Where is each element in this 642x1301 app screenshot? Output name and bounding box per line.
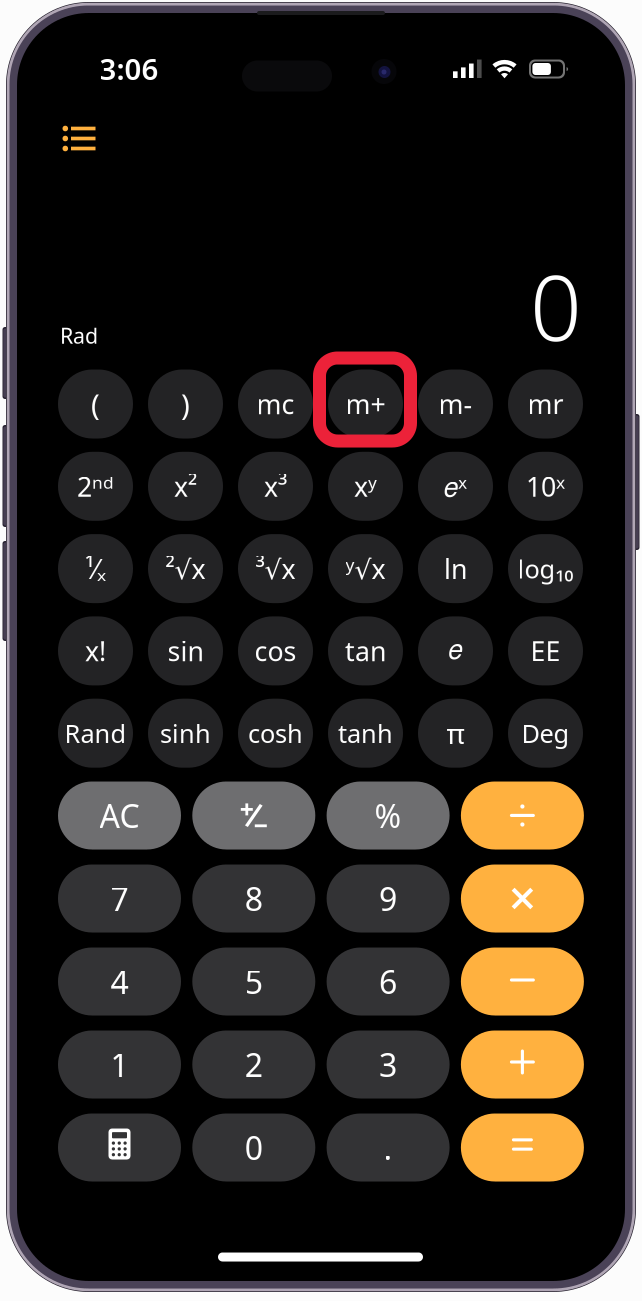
button[interactable]: m+	[328, 369, 403, 438]
button[interactable]: m-	[418, 369, 493, 438]
button[interactable]: 3	[327, 1030, 450, 1098]
staticText: 3:06	[99, 49, 158, 88]
staticText: 6	[379, 960, 397, 1003]
staticText: mc	[256, 386, 294, 422]
staticText: .	[384, 1126, 393, 1169]
button[interactable]: %	[327, 781, 450, 849]
button[interactable]: Add	[461, 1030, 584, 1098]
staticText: m-	[438, 386, 472, 422]
staticText: 8	[245, 877, 263, 920]
staticText: 7	[110, 877, 128, 920]
button[interactable]: 4	[58, 947, 181, 1015]
staticText: x³	[264, 469, 287, 504]
button[interactable]: 10ˣ	[508, 452, 583, 521]
staticText: x!	[85, 633, 106, 669]
staticText: m+	[345, 386, 385, 422]
button[interactable]: ln	[418, 534, 493, 603]
button[interactable]: Deg	[508, 699, 583, 768]
staticText: 𝑒	[448, 638, 462, 664]
button[interactable]: cos	[238, 616, 313, 685]
button[interactable]: ³√x	[238, 534, 313, 603]
button[interactable]: .	[327, 1113, 450, 1181]
button[interactable]: AC	[58, 781, 181, 849]
staticText: sin	[167, 633, 203, 669]
staticText: 10ˣ	[526, 469, 565, 504]
button[interactable]: x³	[238, 452, 313, 521]
staticText: mr	[527, 386, 563, 422]
staticText: 0	[245, 1126, 263, 1169]
staticText: ¹⁄ₓ	[85, 551, 106, 586]
button[interactable]: Divide	[461, 781, 584, 849]
button[interactable]: 1	[58, 1030, 181, 1098]
button[interactable]: mc	[238, 369, 313, 438]
staticText: )	[181, 384, 190, 423]
button[interactable]: xʸ	[328, 452, 403, 521]
staticText: 𝑒ˣ	[444, 469, 467, 504]
button[interactable]: tan	[328, 616, 403, 685]
staticText: ²√x	[165, 551, 205, 586]
button[interactable]: 2ⁿᵈ	[58, 452, 133, 521]
staticText: 2ⁿᵈ	[77, 469, 114, 504]
button[interactable]: Multiply	[461, 864, 584, 932]
button[interactable]: 7	[58, 864, 181, 932]
staticText: π	[446, 715, 464, 752]
button[interactable]: 6	[327, 947, 450, 1015]
staticText: 5	[245, 960, 263, 1003]
button[interactable]: 8	[192, 864, 315, 932]
button[interactable]: π	[418, 699, 493, 768]
button[interactable]: 𝑒ˣ	[418, 452, 493, 521]
button[interactable]: sinh	[148, 699, 223, 768]
button[interactable]: (	[58, 369, 133, 438]
button[interactable]: History	[52, 114, 106, 162]
staticText: cos	[254, 633, 296, 669]
staticText: EE	[530, 633, 560, 669]
button[interactable]: 2	[192, 1030, 315, 1098]
button[interactable]: sin	[148, 616, 223, 685]
staticText: x²	[174, 469, 197, 504]
button[interactable]: 𝑒	[418, 616, 493, 685]
staticText: ʸ√x	[345, 551, 385, 586]
button[interactable]: Basic calculator	[58, 1113, 181, 1181]
button[interactable]: Equals	[461, 1113, 584, 1181]
button[interactable]: log₁₀	[508, 534, 583, 603]
button[interactable]: x!	[58, 616, 133, 685]
button[interactable]: ¹⁄ₓ	[58, 534, 133, 603]
staticText: ln	[444, 551, 467, 586]
staticText: tan	[345, 633, 386, 669]
button[interactable]: cosh	[238, 699, 313, 768]
button[interactable]: Rand	[58, 699, 133, 768]
staticText: AC	[99, 794, 139, 837]
staticText: cosh	[248, 716, 303, 750]
button[interactable]: mr	[508, 369, 583, 438]
button[interactable]: x²	[148, 452, 223, 521]
button[interactable]: Subtract	[461, 947, 584, 1015]
button[interactable]: tanh	[328, 699, 403, 768]
staticText: Rad	[60, 321, 98, 350]
button[interactable]: EE	[508, 616, 583, 685]
staticText: ³√x	[255, 551, 295, 586]
staticText: Rand	[64, 716, 126, 750]
button[interactable]: ʸ√x	[328, 534, 403, 603]
button[interactable]: 5	[192, 947, 315, 1015]
staticText: 9	[379, 877, 397, 920]
staticText: %	[375, 794, 402, 837]
staticText: 4	[110, 960, 128, 1003]
staticText: 1	[110, 1043, 128, 1086]
staticText: log₁₀	[517, 552, 573, 585]
staticText: 3	[379, 1043, 397, 1086]
button[interactable]: Plus minus	[192, 781, 315, 849]
staticText: sinh	[160, 716, 211, 750]
button[interactable]: 9	[327, 864, 450, 932]
button[interactable]: ²√x	[148, 534, 223, 603]
staticText: 2	[245, 1043, 263, 1086]
button[interactable]: )	[148, 369, 223, 438]
staticText: tanh	[338, 716, 393, 750]
staticText: 0	[530, 245, 582, 366]
staticText: Deg	[521, 716, 569, 750]
button[interactable]: 0	[192, 1113, 315, 1181]
staticText: xʸ	[354, 469, 377, 504]
staticText: (	[91, 384, 100, 423]
